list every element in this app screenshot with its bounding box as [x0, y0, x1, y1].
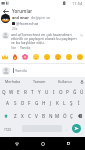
- staticText: I: [53, 89, 55, 95]
- staticText: @fsomechat: [16, 21, 39, 26]
- staticText: P: [66, 89, 69, 95]
- button[interactable]: Home: [35, 137, 51, 150]
- button[interactable]: ?123: [0, 122, 14, 137]
- staticText: Yanıtla: [15, 68, 27, 73]
- button[interactable]: X: [19, 109, 26, 122]
- staticText: değişim ve: [31, 15, 51, 20]
- button[interactable]: Yanıtla: [0, 64, 85, 77]
- staticText: 23s: [12, 27, 18, 30]
- staticText: 11:54: [72, 1, 83, 6]
- button[interactable]: J: [47, 97, 54, 109]
- button[interactable]: K: [54, 97, 61, 109]
- staticText: H: [42, 100, 46, 106]
- button[interactable]: Emoji reaction: [74, 51, 85, 63]
- staticText: V: [35, 113, 38, 119]
- staticText: S: [14, 100, 17, 106]
- button[interactable]: İ: [75, 97, 82, 109]
- staticText: Tamam: [33, 79, 46, 84]
- button[interactable]: Ü: [78, 86, 85, 97]
- button[interactable]: Emoji reaction: [20, 51, 30, 63]
- button[interactable]: Ç: [68, 109, 75, 122]
- staticText: J: [50, 100, 52, 106]
- button[interactable]: Like: [78, 32, 84, 38]
- button[interactable]: Z: [11, 109, 19, 122]
- button[interactable]: Merhaba: [0, 77, 26, 86]
- staticText: C: [28, 113, 31, 119]
- button[interactable]: U: [43, 86, 50, 97]
- button[interactable]: H: [40, 97, 47, 109]
- staticText: .: [66, 127, 68, 133]
- staticText: Ç: [70, 113, 73, 119]
- staticText: 5sn: [11, 46, 17, 50]
- button[interactable]: E: [15, 86, 22, 97]
- staticText: E: [17, 89, 20, 95]
- staticText: D: [21, 100, 25, 106]
- staticText: F: [28, 100, 31, 106]
- button[interactable]: Kullanıcı: [52, 77, 78, 86]
- button[interactable]: B: [40, 109, 47, 122]
- button[interactable]: Send: [72, 124, 81, 133]
- staticText: Z: [14, 113, 17, 119]
- button[interactable]: anıl.a/Somechost en çok kazandıran etkin…: [0, 32, 85, 50]
- staticText: N: [49, 113, 53, 119]
- staticText: T: [31, 89, 34, 95]
- button[interactable]: O: [57, 86, 64, 97]
- button[interactable]: Tamam: [26, 77, 52, 86]
- button[interactable]: Ş: [68, 97, 75, 109]
- button[interactable]: M: [54, 109, 61, 122]
- staticText: İ: [78, 100, 80, 106]
- button[interactable]: N: [47, 109, 54, 122]
- staticText: Kullanıcı: [58, 79, 73, 84]
- button[interactable]: G: [33, 97, 40, 109]
- button[interactable]: P: [64, 86, 71, 97]
- button[interactable]: R: [22, 86, 29, 97]
- button[interactable]: Recent apps: [60, 137, 76, 150]
- button[interactable]: Emoji reaction: [0, 51, 10, 63]
- button[interactable]: F: [26, 97, 33, 109]
- staticText: X: [21, 113, 24, 119]
- button[interactable]: Emoji reaction: [63, 51, 74, 63]
- staticText: U: [45, 89, 49, 95]
- button[interactable]: V: [33, 109, 40, 122]
- staticText: Merhaba: [5, 79, 21, 84]
- button[interactable]: Emoji reaction: [41, 51, 52, 63]
- staticText: Y: [38, 89, 41, 95]
- staticText: K: [56, 100, 59, 106]
- button[interactable]: anıl onur: [0, 14, 85, 30]
- staticText: Ğ: [73, 89, 77, 95]
- staticText: anıl onur: [12, 15, 30, 20]
- button[interactable]: Y: [36, 86, 43, 97]
- button[interactable]: Ğ: [71, 86, 78, 97]
- staticText: R: [24, 89, 27, 95]
- button[interactable]: Shift: [0, 109, 11, 122]
- button[interactable]: Emoji reaction: [30, 51, 41, 63]
- button[interactable]: Ö: [61, 109, 68, 122]
- staticText: M: [55, 113, 60, 119]
- button[interactable]: Back: [0, 7, 12, 15]
- button[interactable]: Emoji reaction: [10, 51, 20, 63]
- staticText: Yorumlar: [12, 8, 33, 14]
- staticText: W: [9, 89, 14, 95]
- button[interactable]: Q: [0, 86, 8, 97]
- button[interactable]: Emoji reaction: [52, 51, 63, 63]
- button[interactable]: D: [19, 97, 26, 109]
- button[interactable]: S: [11, 97, 19, 109]
- button[interactable]: A: [3, 97, 11, 109]
- staticText: Ü: [80, 89, 84, 95]
- staticText: O: [59, 89, 63, 95]
- button[interactable]: I: [50, 86, 57, 97]
- staticText: Ö: [63, 113, 67, 119]
- button[interactable]: Yanıtla: [20, 46, 31, 50]
- button[interactable]: W: [8, 86, 15, 97]
- button[interactable]: L: [61, 97, 68, 109]
- button[interactable]: C: [26, 109, 33, 122]
- button[interactable]: Back: [9, 137, 25, 150]
- button[interactable]: T: [29, 86, 36, 97]
- button[interactable]: Backspace: [75, 109, 85, 122]
- staticText: B: [42, 113, 45, 119]
- button[interactable]: Voice input: [78, 77, 85, 86]
- staticText: Ş: [70, 100, 73, 106]
- staticText: L: [63, 100, 66, 106]
